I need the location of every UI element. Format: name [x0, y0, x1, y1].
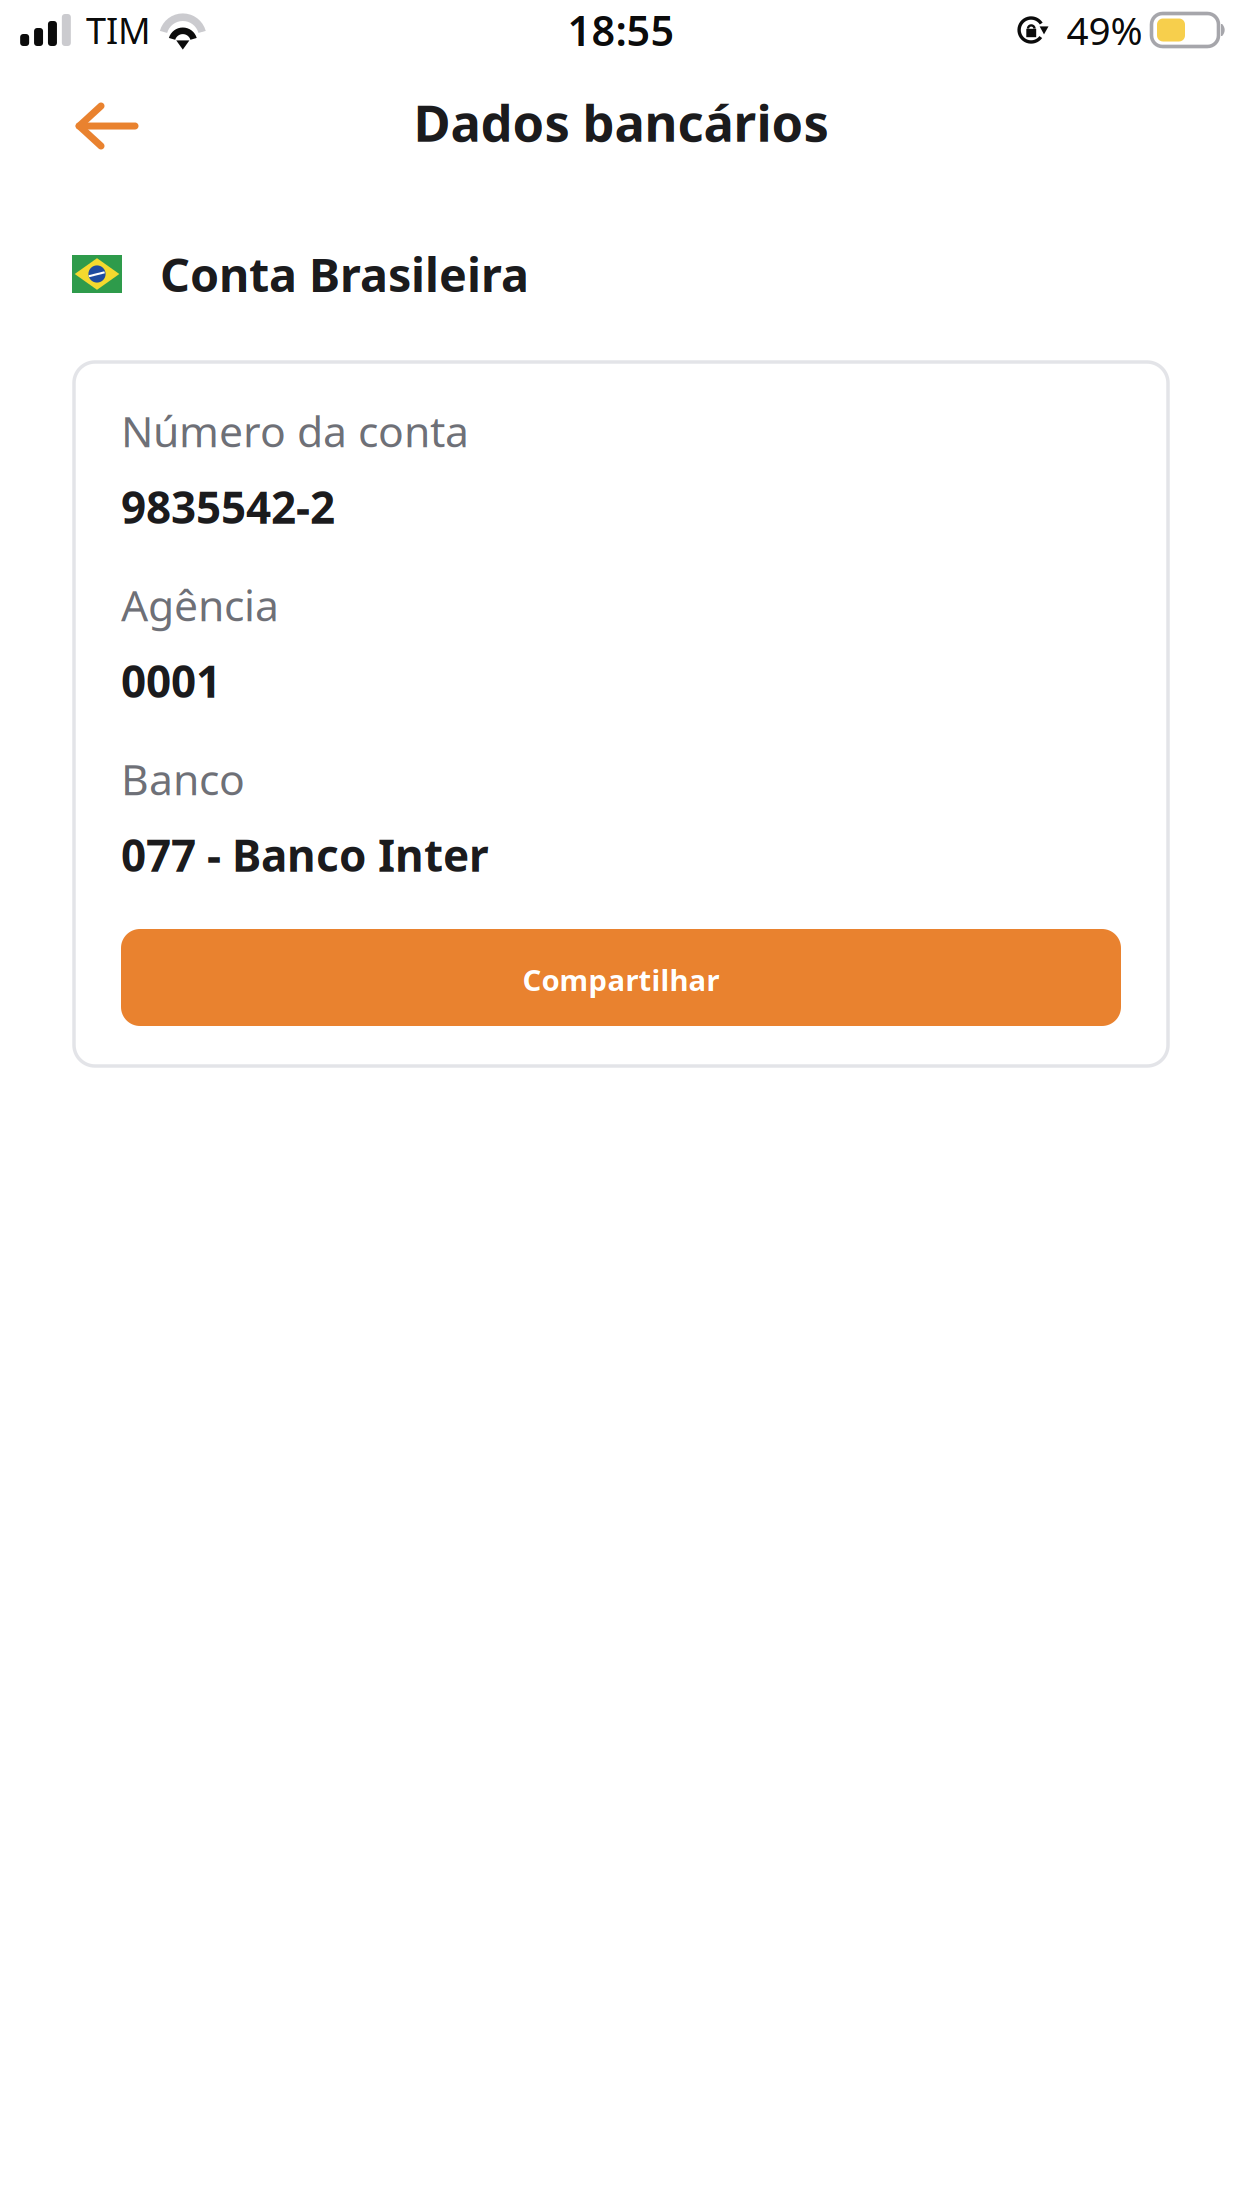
staticText: 077 - Banco Inter — [121, 826, 489, 884]
staticText: Dados bancários — [413, 88, 828, 156]
button[interactable]: Back — [0, 78, 170, 174]
staticText: 9835542-2 — [121, 478, 335, 536]
staticText: TIM — [86, 6, 151, 54]
staticText: 49% — [1066, 4, 1142, 56]
staticText: Agência — [121, 576, 279, 633]
staticText: Conta Brasileira — [160, 243, 529, 305]
staticText: 0001 — [121, 652, 221, 710]
staticText: Compartilhar — [522, 960, 719, 999]
staticText: Número da conta — [121, 402, 469, 459]
staticText: Banco — [121, 750, 245, 807]
staticText: 18:55 — [567, 3, 674, 57]
button[interactable]: Compartilhar — [121, 929, 1121, 1026]
